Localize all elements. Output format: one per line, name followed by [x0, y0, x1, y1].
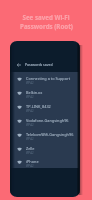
button[interactable]: TP-LINK_8432: [10, 100, 80, 114]
button[interactable]: TelekomWifi-Gangsingh96: [10, 128, 80, 142]
staticText: iPhone: [26, 159, 39, 164]
staticText: Passwords (Root): [20, 22, 73, 30]
button[interactable]: Belkin.xx: [10, 86, 80, 100]
button[interactable]: Zelle: [10, 142, 80, 156]
staticText: Belkin.xx: [26, 90, 43, 95]
staticText: Passwords saved: [25, 62, 53, 67]
staticText: TP-LINK_8432: [26, 104, 51, 109]
staticText: WPA2: [26, 95, 34, 99]
button[interactable]: Vodafone-Gangsingh96: [10, 114, 80, 128]
staticText: WPA2: [26, 151, 34, 155]
staticText: WPA2: [26, 81, 34, 85]
button[interactable]: iPhone: [10, 156, 80, 168]
staticText: WPA2: [26, 123, 34, 127]
button[interactable]: Connecting a to Support WiFi-AP88: [10, 72, 80, 86]
button[interactable]: Back: [15, 61, 22, 68]
staticText: WPA2: [26, 137, 34, 141]
staticText: WPA2: [26, 164, 34, 168]
staticText: Zelle: [26, 146, 35, 151]
staticText: Vodafone-Gangsingh96: [26, 118, 69, 123]
staticText: Connecting a to Support WiFi-AP88: [26, 76, 77, 81]
staticText: See saved Wi-Fi: [22, 13, 70, 21]
staticText: WPA2: [26, 109, 34, 113]
staticText: TelekomWifi-Gangsingh96: [26, 132, 74, 137]
